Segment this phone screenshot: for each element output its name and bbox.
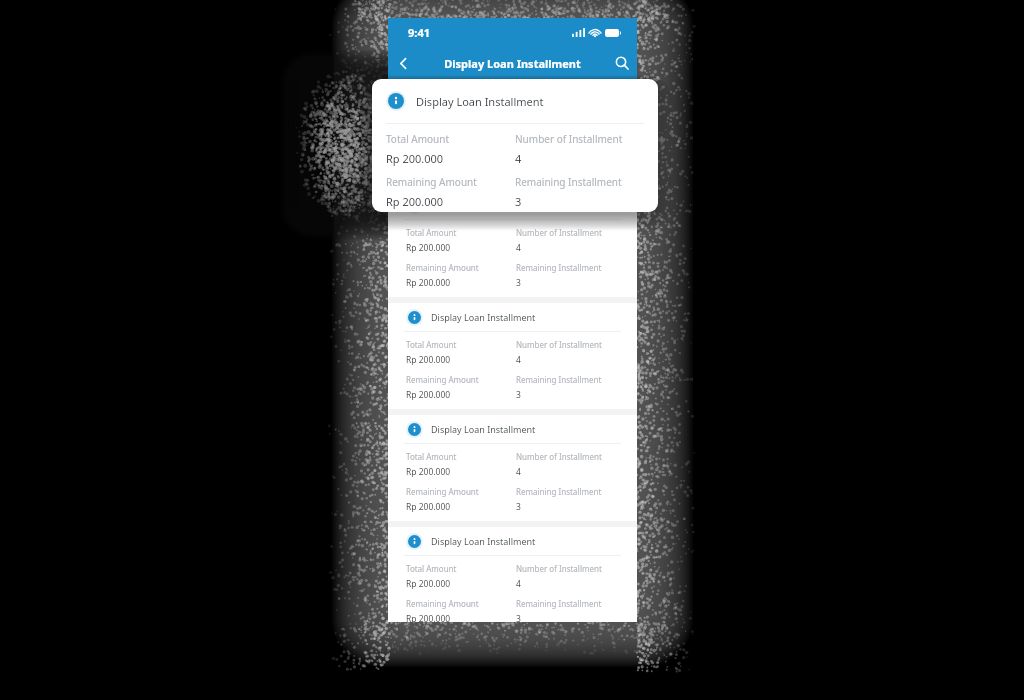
button[interactable]: Display Loan Installment — [372, 79, 658, 212]
button[interactable]: Display Loan Installment — [388, 303, 637, 409]
staticText: Total Amount — [406, 227, 457, 238]
staticText: Remaining Amount — [406, 262, 479, 273]
staticText: Remaining Installment — [516, 150, 602, 161]
staticText: Remaining Amount — [406, 598, 479, 609]
staticText: Display Loan Installment — [431, 311, 536, 323]
staticText: Rp 200.000 — [406, 277, 451, 289]
staticText: Remaining Amount — [406, 150, 479, 161]
button[interactable]: Display Loan Installment — [388, 79, 637, 185]
button[interactable]: Back — [388, 48, 418, 78]
button[interactable]: Display Loan Installment — [388, 415, 637, 521]
staticText: Total Amount — [406, 115, 457, 126]
staticText: 4 — [516, 130, 521, 142]
staticText: Display Loan Installment — [444, 56, 581, 71]
staticText: 4 — [516, 354, 521, 366]
staticText: Number of Installment — [516, 115, 602, 126]
staticText: Number of Installment — [516, 451, 602, 462]
staticText: Remaining Installment — [516, 374, 602, 385]
staticText: Number of Installment — [515, 132, 623, 146]
staticText: Rp 200.000 — [386, 151, 444, 166]
staticText: 3 — [515, 194, 522, 209]
staticText: 9:41 — [408, 25, 430, 40]
staticText: Total Amount — [386, 132, 450, 146]
staticText: Display Loan Installment — [431, 199, 536, 211]
staticText: Remaining Amount — [386, 175, 477, 189]
staticText: Remaining Installment — [516, 262, 602, 273]
staticText: Rp 200.000 — [406, 501, 451, 513]
button[interactable]: Search — [607, 48, 637, 78]
staticText: Rp 200.000 — [406, 578, 451, 590]
staticText: Total Amount — [406, 563, 457, 574]
staticText: Rp 200.000 — [406, 242, 451, 254]
staticText: Remaining Installment — [516, 486, 602, 497]
button[interactable]: Display Loan Installment — [388, 191, 637, 297]
staticText: Total Amount — [406, 339, 457, 350]
staticText: Rp 200.000 — [406, 613, 451, 622]
staticText: 3 — [516, 613, 521, 622]
staticText: Number of Installment — [516, 227, 602, 238]
staticText: Rp 200.000 — [406, 466, 451, 478]
staticText: Rp 200.000 — [406, 130, 451, 142]
staticText: Rp 200.000 — [406, 354, 451, 366]
staticText: Remaining Amount — [406, 374, 479, 385]
staticText: 3 — [516, 389, 521, 401]
staticText: 4 — [516, 242, 521, 254]
staticText: Rp 200.000 — [406, 389, 451, 401]
staticText: Number of Installment — [516, 339, 602, 350]
staticText: Rp 200.000 — [386, 194, 444, 209]
staticText: Display Loan Installment — [416, 94, 544, 109]
button[interactable]: Display Loan Installment — [388, 527, 637, 622]
staticText: 4 — [515, 151, 522, 166]
staticText: Total Amount — [406, 451, 457, 462]
staticText: Display Loan Installment — [431, 535, 536, 547]
staticText: Display Loan Installment — [431, 87, 536, 99]
staticText: Display Loan Installment — [431, 423, 536, 435]
staticText: Remaining Installment — [516, 598, 602, 609]
staticText: 4 — [516, 578, 521, 590]
staticText: 3 — [516, 277, 521, 289]
staticText: Number of Installment — [516, 563, 602, 574]
staticText: 3 — [516, 501, 521, 513]
staticText: Remaining Installment — [515, 175, 622, 189]
staticText: Remaining Amount — [406, 486, 479, 497]
staticText: 4 — [516, 466, 521, 478]
